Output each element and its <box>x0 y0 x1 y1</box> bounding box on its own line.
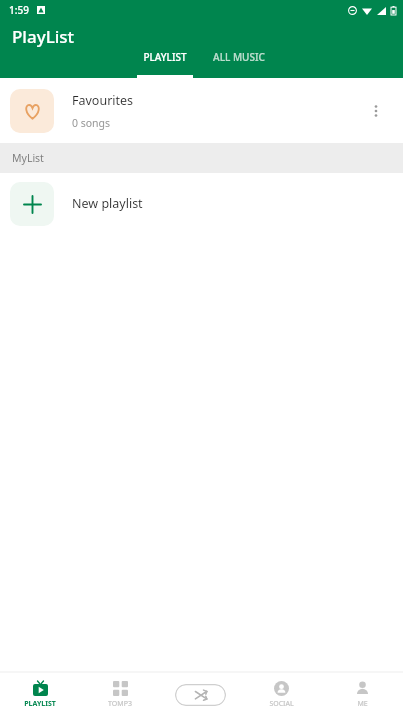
staticText: 1:59 <box>9 3 29 17</box>
staticText: PlayList <box>12 25 75 48</box>
button[interactable]: PLAYLIST <box>0 672 80 718</box>
staticText: ALL MUSIC <box>213 50 265 64</box>
staticText: MyList <box>12 151 44 165</box>
staticText: ME <box>357 699 368 709</box>
button[interactable]: Favourites <box>0 78 403 143</box>
staticText: PLAYLIST <box>143 50 187 64</box>
staticText: 0 songs <box>72 116 111 130</box>
button[interactable]: ALL MUSIC <box>202 46 276 78</box>
staticText: Favourites <box>72 92 134 109</box>
staticText: New playlist <box>72 195 143 212</box>
button[interactable]: Shuffle <box>175 684 226 706</box>
button[interactable]: TOMP3 <box>80 672 160 718</box>
button[interactable]: SOCIAL <box>241 672 322 718</box>
button[interactable]: ME <box>322 672 403 718</box>
button[interactable]: More options <box>359 94 393 128</box>
staticText: SOCIAL <box>269 699 294 709</box>
staticText: TOMP3 <box>108 699 132 709</box>
button[interactable]: New playlist <box>0 173 403 234</box>
button[interactable]: PLAYLIST <box>128 46 202 78</box>
staticText: PLAYLIST <box>24 699 56 709</box>
